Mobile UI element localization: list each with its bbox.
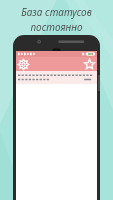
button[interactable]: Settings xyxy=(17,58,30,71)
staticText: постоянно обновляется xyxy=(3,20,110,48)
staticText: База статусов xyxy=(21,5,92,19)
button[interactable] xyxy=(16,71,97,84)
button[interactable]: Favorites xyxy=(83,58,96,71)
